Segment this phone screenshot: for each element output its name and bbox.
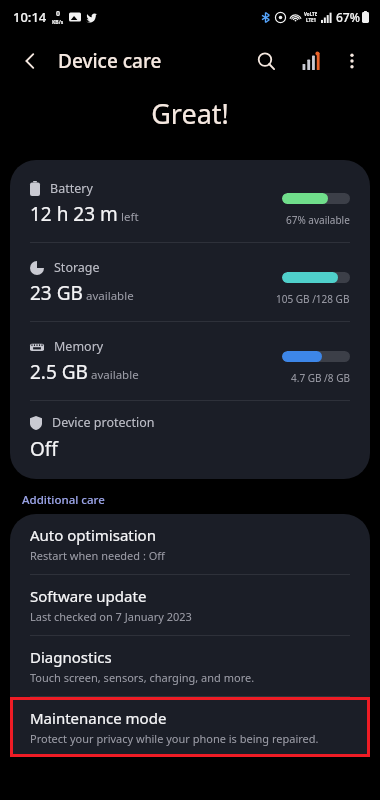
staticText: available <box>88 367 139 383</box>
button[interactable]: Search <box>244 39 288 83</box>
staticText: Touch screen, sensors, charging, and mor… <box>30 670 255 685</box>
staticText: left <box>118 209 139 225</box>
staticText: Off <box>30 436 58 462</box>
button[interactable]: Memory <box>10 322 370 400</box>
staticText: available <box>83 288 134 304</box>
staticText: 12 h 23 m <box>30 201 118 227</box>
button[interactable]: More options <box>332 41 372 81</box>
staticText: 23 GB <box>30 280 83 306</box>
staticText: Protect your privacy while your phone is… <box>30 731 319 746</box>
button[interactable]: Usage statistics <box>288 39 332 83</box>
staticText: Memory <box>54 338 104 355</box>
button[interactable]: Maintenance mode <box>10 697 370 757</box>
staticText: 105 GB /128 GB <box>276 292 350 306</box>
staticText: 67% <box>336 9 360 25</box>
staticText: Great! <box>151 95 229 132</box>
staticText: 2.5 GB <box>30 359 88 385</box>
button[interactable]: Auto optimisation <box>10 514 370 574</box>
staticText: Auto optimisation <box>30 525 156 545</box>
button[interactable]: Battery <box>10 164 370 242</box>
staticText: 67% available <box>286 213 350 227</box>
staticText: 10:14 <box>13 8 47 26</box>
button[interactable]: Back <box>8 39 52 83</box>
staticText: Last checked on 7 January 2023 <box>30 609 192 624</box>
staticText: VoLTE <box>304 11 318 17</box>
staticText: LTE1 <box>306 17 317 23</box>
button[interactable]: Software update <box>10 575 370 635</box>
staticText: Device protection <box>52 414 155 431</box>
button[interactable]: Device protection <box>10 401 370 475</box>
staticText: Additional care <box>22 492 105 508</box>
staticText: 4.7 GB /8 GB <box>291 371 350 385</box>
staticText: KB/s <box>52 19 64 26</box>
button[interactable]: Storage <box>10 243 370 321</box>
staticText: Software update <box>30 586 147 606</box>
button[interactable]: Diagnostics <box>10 636 370 696</box>
staticText: Maintenance mode <box>30 708 167 728</box>
staticText: Diagnostics <box>30 647 112 667</box>
staticText: Device care <box>58 48 162 74</box>
staticText: Storage <box>54 259 100 276</box>
staticText: 0 <box>56 9 61 19</box>
staticText: Battery <box>50 180 93 197</box>
staticText: Restart when needed : Off <box>30 548 165 563</box>
